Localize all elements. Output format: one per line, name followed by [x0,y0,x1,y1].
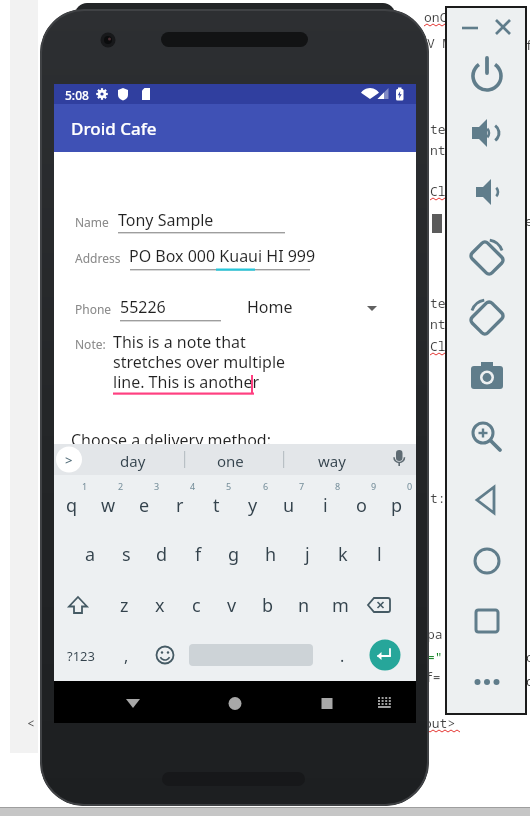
button[interactable]: f [180,539,216,569]
button[interactable] [362,590,398,620]
staticText: x [155,593,165,618]
button[interactable] [469,664,505,700]
button[interactable]: e [126,490,162,520]
staticText: te [430,120,446,138]
staticText: e [525,212,530,230]
button[interactable]: b [250,590,286,620]
button[interactable] [60,590,96,620]
staticText: 5 [226,480,232,492]
staticText: z [120,593,129,618]
button[interactable]: u [271,490,307,520]
staticText: , [124,645,129,667]
button[interactable]: n [286,590,322,620]
staticText: Phone [75,301,112,317]
staticText: 1 [82,480,88,492]
staticText: v [227,593,237,618]
button[interactable] [60,640,100,670]
staticText: a [85,542,96,567]
button[interactable]: s [108,539,144,569]
staticText: nt [430,315,446,333]
button[interactable] [56,446,82,472]
staticText: Note: [75,336,106,352]
button[interactable]: h [253,539,289,569]
button[interactable] [469,543,505,579]
button[interactable] [112,640,142,670]
button[interactable] [90,444,184,475]
button[interactable] [150,640,180,670]
button[interactable] [468,419,506,457]
button[interactable]: v [214,590,250,620]
button[interactable]: Droid Cafe [71,117,157,140]
staticText: Name [75,214,109,230]
staticText: 55226 [120,296,166,318]
staticText: f= [425,668,441,686]
button[interactable]: i [307,490,343,520]
button[interactable]: d [144,539,180,569]
button[interactable] [466,235,508,277]
button[interactable]: w [90,490,126,520]
button[interactable] [468,357,506,395]
staticText: ?123 [67,647,95,665]
button[interactable] [284,444,382,475]
button[interactable] [466,295,508,337]
staticText: e [139,493,150,518]
button[interactable]: z [106,590,142,620]
staticText: b [262,593,274,618]
staticText: t [213,493,220,518]
staticText: y [248,493,258,518]
button[interactable]: x [142,590,178,620]
button[interactable] [459,17,481,39]
button[interactable] [204,289,384,323]
button[interactable] [386,444,416,475]
staticText: q [66,493,78,518]
button[interactable] [468,56,506,94]
button[interactable] [468,114,506,152]
button[interactable]: l [361,539,397,569]
button[interactable]: q [54,490,90,520]
staticText: day [120,451,146,471]
staticText: onCl [424,8,456,26]
staticText: h [265,542,277,567]
staticText: Choose a delivery method: [71,429,272,451]
staticText: 6 [263,480,269,492]
staticText: o [526,648,530,666]
button[interactable] [470,175,504,209]
button[interactable]: y [235,490,271,520]
button[interactable]: p [379,490,415,520]
staticText: o [356,493,367,518]
staticText: f [525,36,530,54]
staticText: V M [427,34,451,52]
staticText: < [27,714,35,732]
staticText: stretches over multiple [113,351,286,373]
staticText: Cl [430,337,446,355]
staticText: u [283,493,295,518]
button[interactable] [469,482,505,518]
button[interactable]: j [289,539,325,569]
button[interactable]: k [325,539,361,569]
button[interactable]: t [198,490,234,520]
button[interactable] [492,16,514,38]
staticText: 0 [407,480,413,492]
staticText: > [65,451,73,469]
staticText: d [156,542,168,567]
button[interactable]: c [178,590,214,620]
button[interactable] [307,683,347,723]
staticText: r [176,493,184,518]
button[interactable]: g [216,539,252,569]
staticText: 5:08 [65,87,89,103]
staticText: t: [430,489,446,507]
button[interactable] [215,683,255,723]
button[interactable]: o [343,490,379,520]
button[interactable] [469,603,505,639]
button[interactable]: a [72,539,108,569]
button[interactable] [364,683,404,723]
staticText: nt [430,141,446,159]
button[interactable] [370,640,401,671]
button[interactable] [185,444,283,475]
button[interactable] [114,683,154,723]
button[interactable] [328,640,358,670]
button[interactable]: r [162,490,198,520]
button[interactable]: m [322,590,358,620]
staticText: Home [247,296,293,318]
